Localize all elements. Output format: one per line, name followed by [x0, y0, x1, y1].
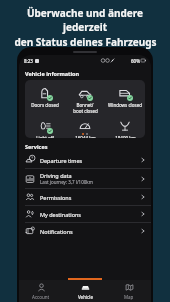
button[interactable]: Notifications: [19, 223, 151, 239]
button[interactable]: Doors closed: [25, 80, 145, 138]
staticText: Vehicle information: [25, 70, 80, 77]
staticText: Vehicle: [78, 294, 93, 300]
staticText: Services: [25, 143, 48, 150]
staticText: Map: [124, 294, 134, 300]
staticText: 16044 km: [75, 135, 96, 138]
staticText: den Status deines Fahrzeugs: [14, 35, 157, 49]
staticText: Bonnet/: [76, 102, 94, 108]
staticText: Doors closed: [31, 102, 59, 108]
staticText: Windows closed: [108, 102, 142, 108]
button[interactable]: My destinations: [19, 206, 151, 222]
button[interactable]: Account: [19, 280, 63, 302]
button[interactable]: Vehicle: [63, 280, 107, 302]
staticText: Light off: [36, 135, 54, 138]
staticText: 60%: [131, 58, 140, 64]
staticText: 8:23: [24, 58, 33, 64]
staticText: Departure times: [40, 157, 83, 164]
staticText: Permissions: [40, 194, 72, 201]
staticText: Last journey: 3,7 l/100km: [40, 179, 93, 185]
staticText: My destinations: [40, 211, 81, 218]
staticText: Driving data: [40, 172, 72, 179]
staticText: 18400 km: [115, 135, 136, 138]
button[interactable]: Permissions: [19, 189, 151, 205]
button[interactable]: Driving data: [19, 169, 151, 188]
staticText: Überwache und ändere jederzeit: [4, 6, 166, 34]
button[interactable]: Map: [107, 280, 151, 302]
staticText: Account: [32, 294, 50, 300]
staticText: boot closed: [73, 108, 98, 114]
staticText: Notifications: [40, 228, 73, 235]
button[interactable]: Departure times: [19, 152, 151, 168]
